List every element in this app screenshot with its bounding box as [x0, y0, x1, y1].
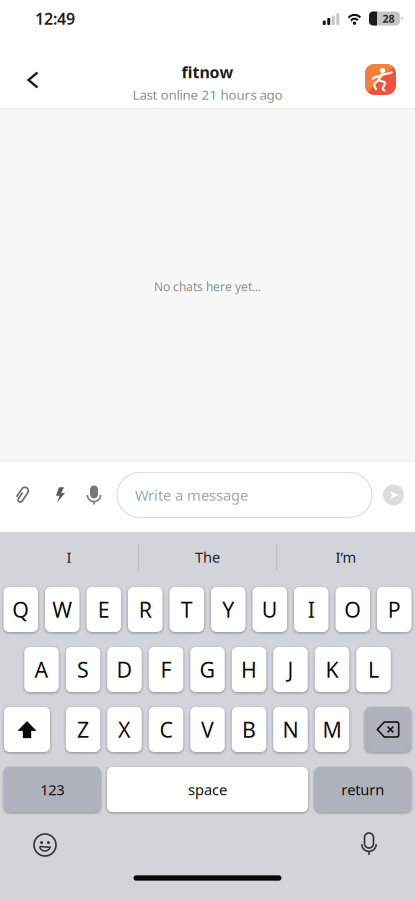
button[interactable]: R [128, 587, 162, 632]
button[interactable]: A [24, 647, 59, 692]
staticText: I’m [335, 547, 356, 567]
staticText: U [262, 595, 278, 624]
staticText: P [388, 595, 401, 624]
staticText: L [368, 655, 379, 684]
staticText: X [118, 715, 131, 744]
button[interactable]: Y [211, 587, 245, 632]
button[interactable]: The [138, 532, 277, 582]
staticText: 12:49 [35, 8, 75, 29]
button[interactable]: L [356, 647, 391, 692]
button[interactable]: Send [383, 484, 404, 505]
button[interactable]: N [273, 707, 308, 752]
staticText: I [308, 595, 315, 624]
staticText: F [160, 655, 171, 684]
button[interactable]: Z [66, 707, 100, 752]
button[interactable]: Attach file [0, 473, 44, 517]
button[interactable]: E [86, 587, 121, 632]
button[interactable]: Emoji [23, 823, 67, 867]
button[interactable]: Write a message [117, 472, 372, 517]
staticText: Z [77, 715, 89, 744]
button[interactable]: Q [3, 587, 38, 632]
button[interactable]: X [107, 707, 142, 752]
button[interactable]: Record voice message [76, 473, 112, 517]
button[interactable]: G [190, 647, 225, 692]
staticText: space [188, 780, 227, 799]
staticText: J [287, 655, 293, 684]
staticText: return [341, 780, 384, 799]
button[interactable]: M [315, 707, 349, 752]
button[interactable]: Back [0, 55, 51, 99]
staticText: N [282, 715, 298, 744]
button[interactable]: V [190, 707, 225, 752]
staticText: R [139, 595, 152, 624]
staticText: M [322, 715, 341, 744]
button[interactable]: B [232, 707, 266, 752]
button[interactable]: T [169, 587, 204, 632]
staticText: H [241, 655, 257, 684]
button[interactable]: Dictation [347, 822, 391, 866]
staticText: W [52, 595, 72, 624]
button[interactable]: I’m [277, 532, 415, 582]
staticText: Y [222, 595, 234, 624]
button[interactable]: Shift [4, 707, 50, 752]
staticText: V [201, 715, 214, 744]
button[interactable]: space [107, 767, 308, 812]
staticText: C [159, 715, 172, 744]
staticText: Q [12, 595, 29, 624]
button[interactable]: H [232, 647, 266, 692]
button[interactable]: J [273, 647, 308, 692]
staticText: O [344, 595, 361, 624]
button[interactable]: O [335, 587, 370, 632]
button[interactable]: S [66, 647, 100, 692]
staticText: 28 [382, 11, 394, 26]
staticText: B [242, 715, 256, 744]
staticText: The [195, 547, 220, 567]
button[interactable]: F [149, 647, 183, 692]
button[interactable]: I [294, 587, 328, 632]
button[interactable]: P [377, 587, 411, 632]
button[interactable]: K [315, 647, 349, 692]
button[interactable]: 123 [4, 767, 100, 812]
button[interactable]: Quick commands [44, 473, 76, 517]
staticText: E [98, 595, 110, 624]
staticText: Last online 21 hours ago [132, 86, 282, 103]
staticText: I [66, 547, 71, 567]
staticText: S [77, 655, 89, 684]
staticText: 123 [40, 780, 64, 799]
staticText: Write a message [135, 485, 248, 505]
staticText: No chats here yet... [154, 278, 261, 294]
staticText: fitnow [181, 61, 233, 83]
button[interactable]: Delete [365, 707, 411, 752]
staticText: G [199, 655, 215, 684]
staticText: T [181, 595, 193, 624]
button[interactable]: D [107, 647, 142, 692]
button[interactable]: W [45, 587, 79, 632]
button[interactable]: return [314, 767, 411, 812]
button[interactable]: U [252, 587, 287, 632]
staticText: A [34, 655, 48, 684]
button[interactable]: fitnow profile [365, 62, 415, 93]
staticText: K [325, 655, 338, 684]
button[interactable]: C [149, 707, 183, 752]
staticText: D [116, 655, 132, 684]
button[interactable]: I [0, 532, 138, 582]
